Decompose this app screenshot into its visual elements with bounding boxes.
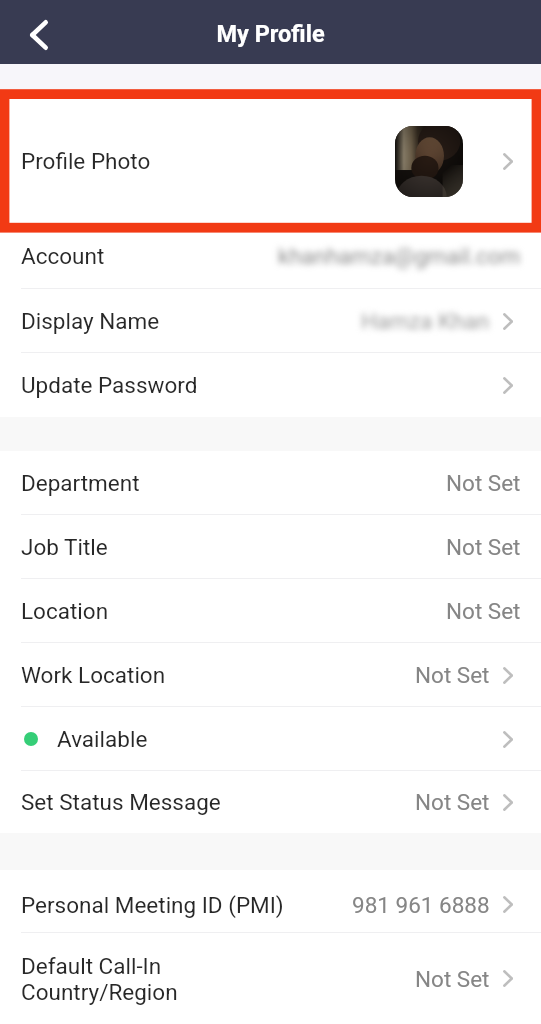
staticText: khanhamza@gmail.com	[278, 243, 521, 269]
button[interactable]: Department	[0, 451, 541, 515]
staticText: Hamza Khan	[361, 308, 490, 334]
button[interactable]: Set Status Message	[0, 771, 541, 833]
button[interactable]: Back	[20, 16, 58, 54]
button[interactable]: Available	[0, 707, 541, 771]
staticText: Job Title	[21, 534, 108, 560]
button[interactable]: Work Location	[0, 643, 541, 707]
staticText: Not Set	[415, 789, 490, 815]
staticText: Display Name	[21, 308, 160, 334]
staticText: Account	[21, 243, 105, 269]
staticText: Not Set	[446, 598, 521, 624]
staticText: 981 961 6888	[352, 892, 490, 918]
staticText: Not Set	[446, 470, 521, 496]
staticText: Not Set	[446, 534, 521, 560]
staticText: Default Call-In Country/Region	[21, 953, 178, 1005]
staticText: Work Location	[21, 662, 166, 688]
staticText: My Profile	[216, 20, 325, 48]
staticText: Set Status Message	[21, 789, 221, 815]
staticText: Department	[21, 470, 140, 496]
staticText: Location	[21, 598, 109, 624]
staticText: Profile Photo	[21, 148, 151, 174]
button[interactable]: Default Call-In Country/Region	[0, 933, 541, 1024]
button[interactable]: Personal Meeting ID (PMI)	[0, 870, 541, 933]
button[interactable]: Location	[0, 579, 541, 643]
staticText: Update Password	[21, 372, 198, 398]
button[interactable]: Profile Photo	[0, 99, 541, 223]
button[interactable]: Display Name	[0, 289, 541, 353]
button[interactable]: Update Password	[0, 353, 541, 417]
staticText: Not Set	[415, 662, 490, 688]
button[interactable]: Job Title	[0, 515, 541, 579]
staticText: Not Set	[415, 966, 490, 992]
staticText: Available	[57, 726, 148, 752]
staticText: Personal Meeting ID (PMI)	[21, 892, 284, 918]
button[interactable]: Account	[0, 223, 541, 289]
